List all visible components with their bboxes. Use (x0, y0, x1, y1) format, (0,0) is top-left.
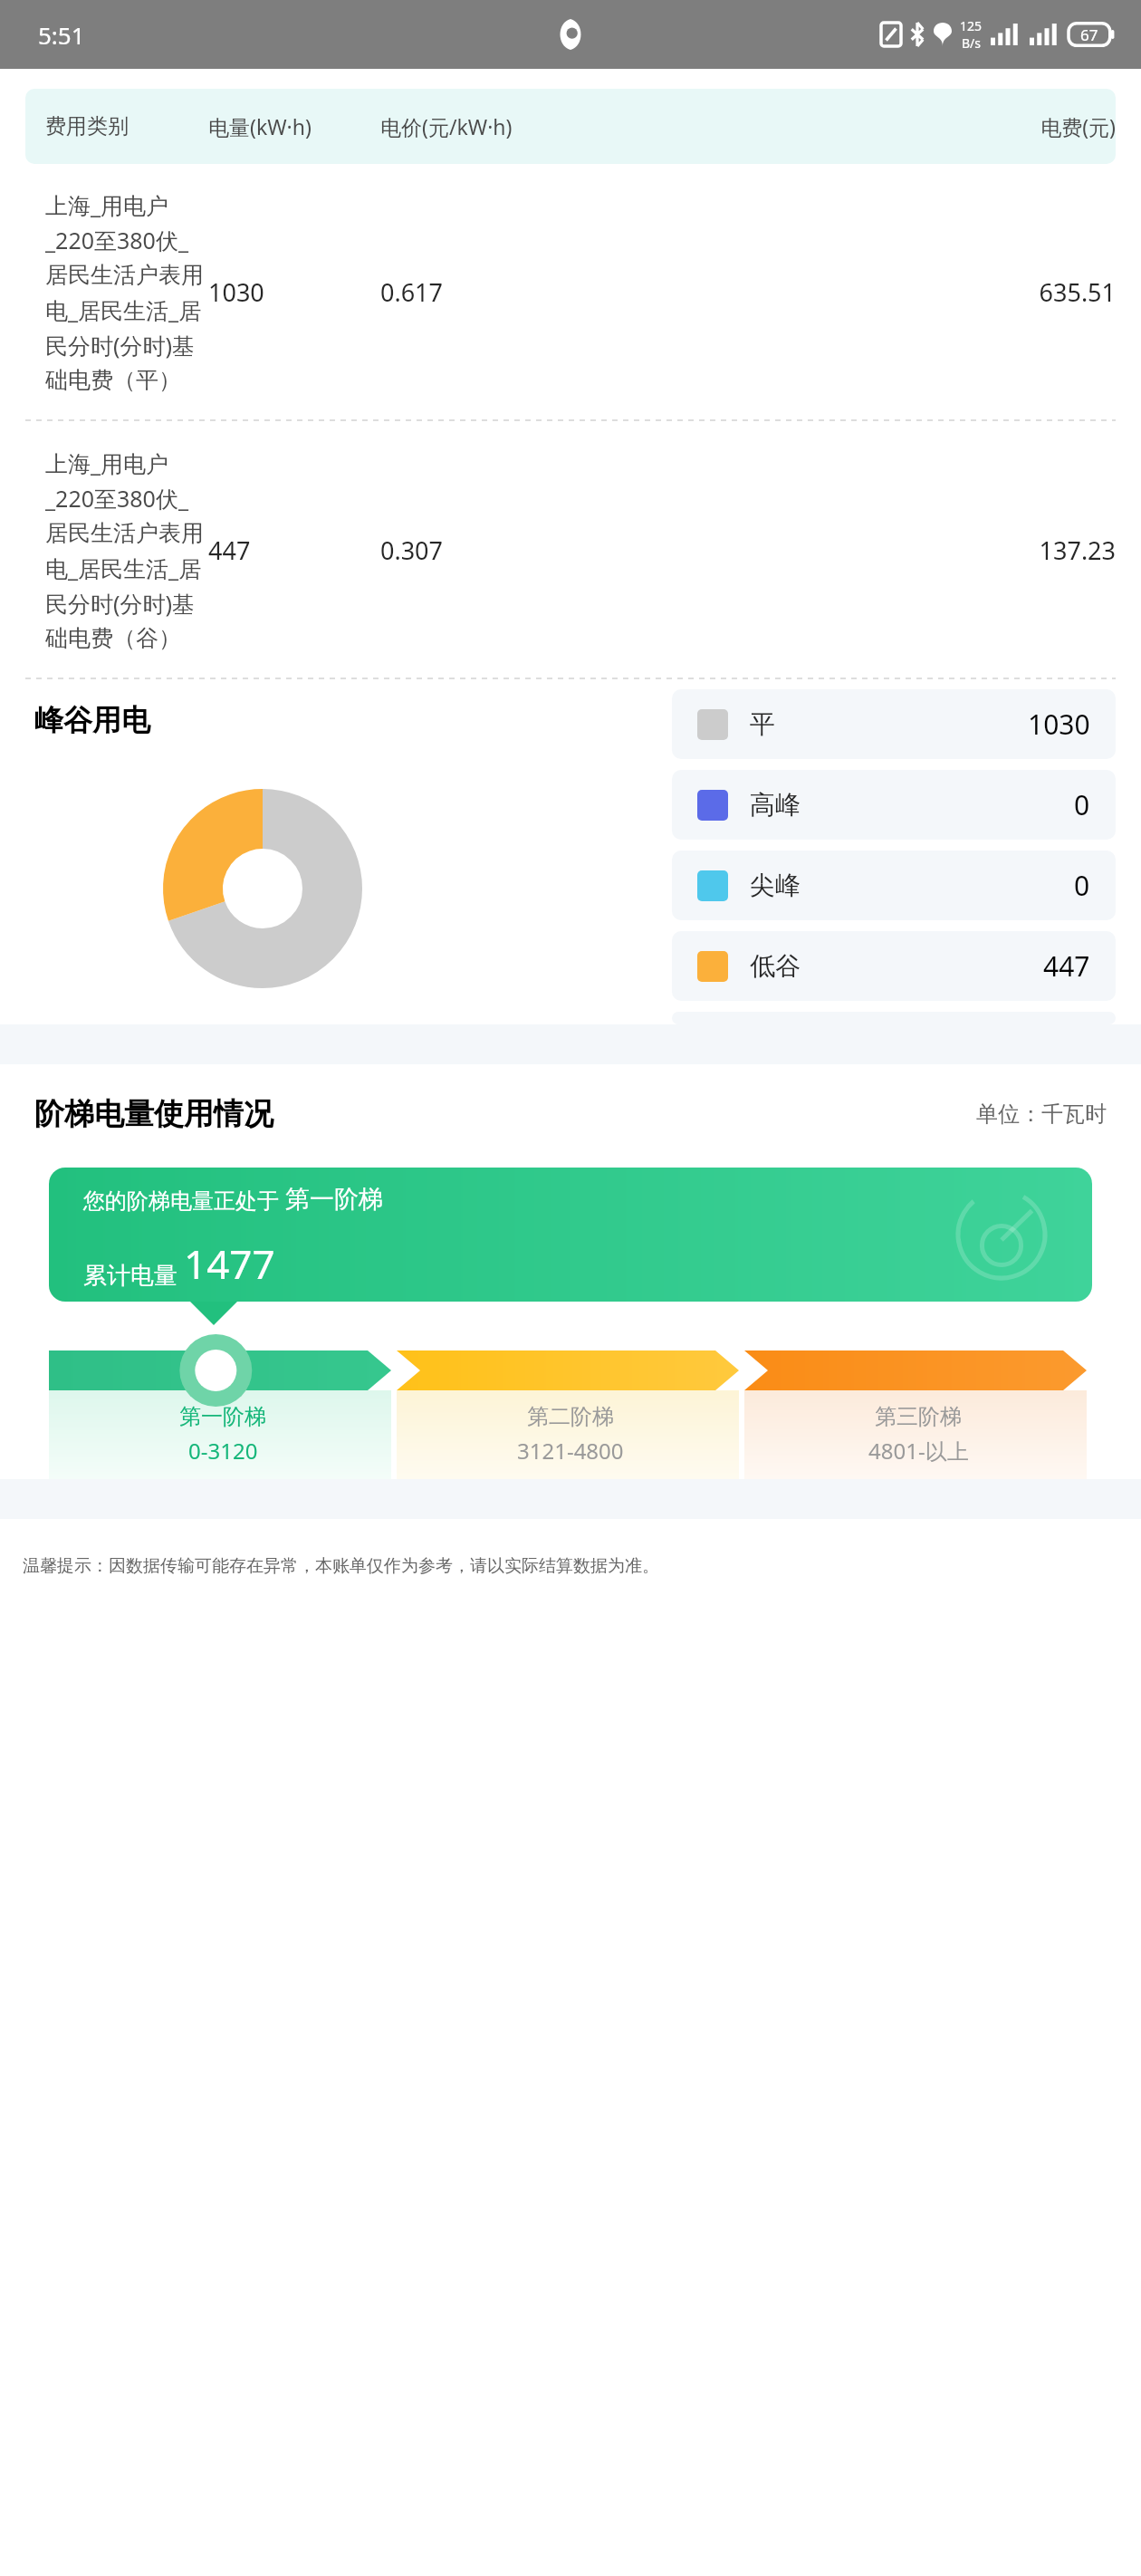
staticText: 您的阶梯电量正处于 (83, 1185, 285, 1215)
staticText: 第二阶梯 (527, 1403, 614, 1430)
staticText: 费用类别 (45, 113, 208, 139)
staticText: 125 (960, 17, 983, 34)
staticText: 第一阶梯 (179, 1403, 266, 1430)
staticText: 第三阶梯 (875, 1403, 962, 1430)
staticText: 上海_用电户_220至380伏_居民生活户表用电_居民生活_居民分时(分时)基础… (45, 447, 208, 653)
staticText: 峰谷用电 (34, 702, 150, 738)
button[interactable]: 第二阶梯 (397, 1334, 744, 1479)
staticText: 635.51 (598, 275, 1116, 309)
button[interactable]: 第一阶梯 (49, 1334, 397, 1479)
staticText: 平 (750, 708, 775, 740)
staticText: 3121-4800 (517, 1436, 624, 1466)
staticText: 0.307 (380, 533, 598, 567)
button[interactable]: 低谷 (672, 931, 1116, 1001)
button[interactable]: 高峰 (672, 770, 1116, 840)
staticText: 电价(元/kW·h) (380, 112, 598, 140)
staticText: 电量(kW·h) (208, 112, 380, 140)
staticText: 上海_用电户_220至380伏_居民生活户表用电_居民生活_居民分时(分时)基础… (45, 189, 208, 395)
staticText: 447 (1043, 947, 1090, 985)
staticText: 电费(元) (598, 112, 1116, 140)
button[interactable]: 上海_用电户_220至380伏_居民生活户表用电_居民生活_居民分时(分时)基础… (0, 422, 1141, 678)
staticText: 0 (1074, 867, 1090, 904)
staticText: 单位：千瓦时 (976, 1101, 1107, 1128)
staticText: 0.617 (380, 275, 598, 309)
staticText: 温馨提示：因数据传输可能存在异常，本账单仅作为参考，请以实际结算数据为准。 (23, 1555, 659, 1577)
button[interactable]: 平 (672, 689, 1116, 759)
staticText: 0-3120 (188, 1436, 258, 1466)
staticText: 447 (208, 533, 380, 567)
staticText: B/s (962, 34, 982, 52)
staticText: 尖峰 (750, 870, 801, 901)
staticText: 5:51 (38, 19, 85, 51)
staticText: 高峰 (750, 789, 801, 821)
staticText: 累计电量 (83, 1258, 184, 1291)
staticText: 低谷 (750, 950, 801, 982)
staticText: 第一阶梯 (285, 1184, 383, 1215)
staticText: 0 (1074, 786, 1090, 823)
staticText: 137.23 (598, 533, 1116, 567)
staticText: 1030 (208, 275, 380, 309)
staticText: 67 (1080, 24, 1098, 45)
staticText: 4801-以上 (868, 1436, 969, 1466)
button[interactable]: 上海_用电户_220至380伏_居民生活户表用电_居民生活_居民分时(分时)基础… (0, 164, 1141, 420)
button[interactable]: 尖峰 (672, 851, 1116, 920)
staticText: 阶梯电量使用情况 (34, 1095, 273, 1133)
staticText: 1477 (184, 1236, 275, 1291)
button[interactable]: 第三阶梯 (744, 1334, 1092, 1479)
staticText: 1030 (1028, 706, 1090, 743)
